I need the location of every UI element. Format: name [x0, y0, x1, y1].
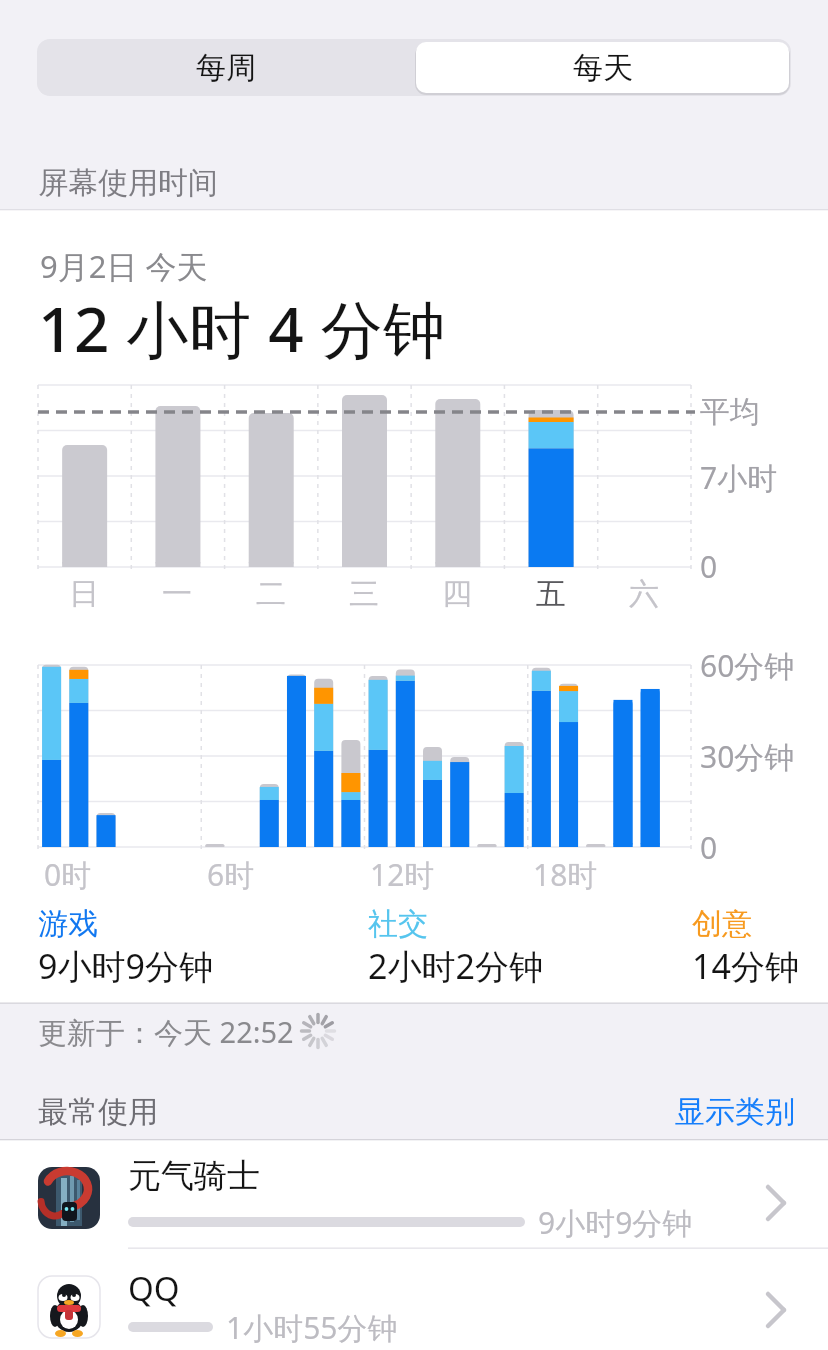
button[interactable]: QQ: [0, 1248, 828, 1350]
staticText: 2小时2分钟: [368, 943, 543, 989]
staticText: 显示类别: [675, 1093, 795, 1131]
button[interactable]: 每周: [37, 39, 414, 96]
staticText: 60分钟: [700, 645, 795, 686]
staticText: 0: [700, 827, 718, 868]
staticText: 30分钟: [700, 736, 795, 777]
staticText: 每周: [196, 49, 256, 87]
button[interactable]: 每天: [416, 42, 789, 93]
staticText: 1小时55分钟: [226, 1307, 398, 1348]
button[interactable]: 元气骑士: [0, 1140, 828, 1248]
staticText: 三: [349, 575, 379, 613]
staticText: 6时: [207, 854, 255, 895]
staticText: 每天: [573, 49, 633, 87]
staticText: QQ: [128, 1266, 180, 1311]
staticText: 六: [629, 575, 659, 613]
staticText: 7小时: [700, 457, 778, 498]
staticText: 18时: [533, 854, 598, 895]
staticText: 日: [69, 575, 99, 613]
staticText: 一: [162, 575, 192, 613]
staticText: 9小时9分钟: [538, 1202, 693, 1243]
staticText: 更新于：今天 22:52: [38, 1012, 294, 1052]
staticText: 0时: [44, 854, 92, 895]
staticText: 12时: [370, 854, 435, 895]
staticText: 五: [536, 575, 566, 613]
staticText: 二: [256, 575, 286, 613]
staticText: 最常使用: [38, 1093, 158, 1131]
staticText: 游戏: [38, 905, 98, 943]
staticText: 元气骑士: [128, 1155, 260, 1197]
staticText: 社交: [368, 905, 428, 943]
staticText: 平均: [700, 393, 760, 431]
staticText: 0: [700, 546, 718, 587]
staticText: 12 小时 4 分钟: [38, 286, 446, 371]
staticText: 创意: [692, 905, 752, 943]
staticText: 9月2日 今天: [40, 245, 208, 287]
staticText: 屏幕使用时间: [38, 164, 218, 202]
staticText: 9小时9分钟: [38, 943, 213, 989]
button[interactable]: 显示类别: [650, 1086, 795, 1138]
staticText: 14分钟: [692, 943, 799, 989]
staticText: 四: [442, 575, 472, 613]
